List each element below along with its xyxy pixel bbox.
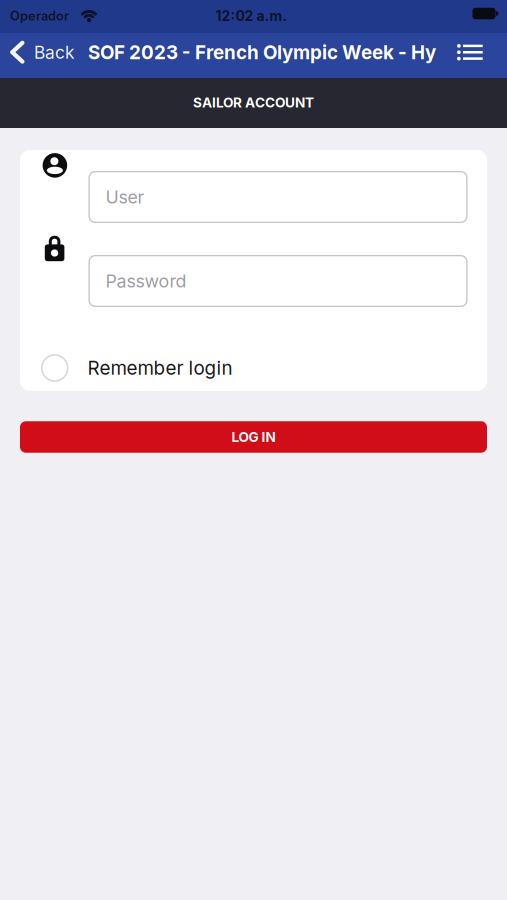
button[interactable]: Password [88,255,467,307]
staticText: Operador [10,8,69,24]
staticText: Back [34,42,74,63]
staticText: LOG IN [231,429,275,445]
button[interactable]: Menu [450,30,490,75]
staticText: SOF 2023 - French Olympic Week - Hy [88,41,436,64]
button[interactable]: LOG IN [20,421,487,453]
button[interactable]: Back [4,30,80,75]
button[interactable]: Remember login [41,348,461,388]
staticText: Password [105,270,186,292]
button[interactable]: User [88,171,467,223]
staticText: Remember login [87,357,232,379]
staticText: SAILOR ACCOUNT [193,94,314,111]
staticText: User [105,186,144,208]
staticText: 12:02 a.m. [215,8,287,24]
